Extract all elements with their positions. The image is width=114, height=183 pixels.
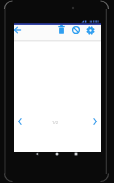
- button[interactable]: [52, 149, 62, 159]
- button[interactable]: [71, 149, 81, 159]
- button[interactable]: [32, 149, 42, 159]
- button[interactable]: [12, 24, 22, 35]
- button[interactable]: [84, 25, 96, 36]
- button[interactable]: [71, 24, 81, 35]
- button[interactable]: [90, 115, 100, 127]
- button[interactable]: [56, 24, 67, 35]
- button[interactable]: [15, 115, 25, 127]
- staticText: 1/2: [52, 120, 59, 125]
